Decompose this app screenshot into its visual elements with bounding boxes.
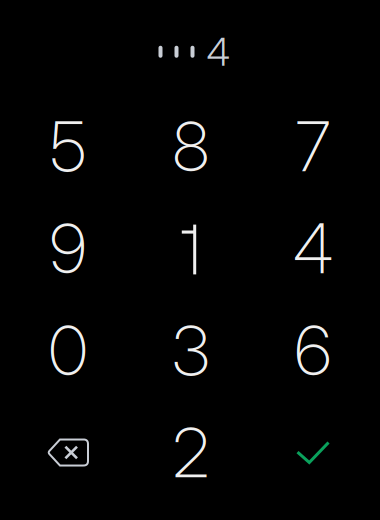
button[interactable]: 3 <box>135 299 247 401</box>
button[interactable]: 6 <box>247 299 379 401</box>
button[interactable]: 5 <box>1 95 135 197</box>
button[interactable]: 2 <box>135 401 247 503</box>
staticText: 3 <box>172 309 210 392</box>
button[interactable]: Delete <box>1 401 135 503</box>
button[interactable]: 0 <box>1 299 135 401</box>
button[interactable]: 4 <box>247 197 379 299</box>
button[interactable]: 8 <box>135 95 247 197</box>
staticText: 4 <box>206 28 229 75</box>
button[interactable]: Confirm <box>247 401 379 503</box>
staticText: 6 <box>294 309 331 392</box>
staticText: 2 <box>172 411 209 494</box>
button[interactable]: 9 <box>1 197 135 299</box>
staticText: 7 <box>295 105 330 188</box>
staticText: 4 <box>293 207 333 290</box>
staticText: 9 <box>49 207 86 290</box>
staticText: 5 <box>50 105 86 188</box>
staticText: 0 <box>48 309 87 392</box>
staticText: 8 <box>172 105 209 188</box>
button[interactable]: 1 <box>135 197 247 299</box>
button[interactable]: 7 <box>247 95 379 197</box>
